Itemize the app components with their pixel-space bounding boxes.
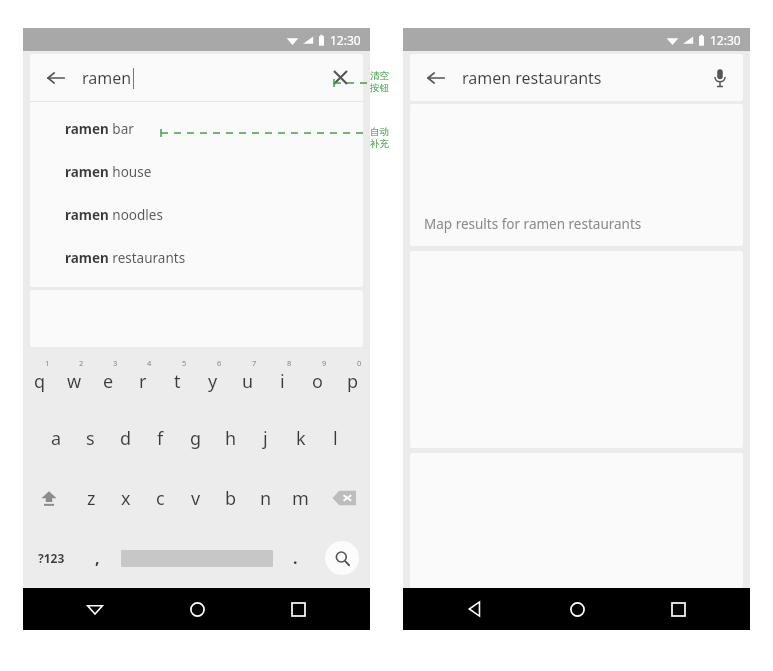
- button[interactable]: ramen house: [30, 150, 363, 193]
- staticText: l: [333, 426, 338, 451]
- button[interactable]: 2: [57, 349, 91, 408]
- button[interactable]: Clear: [317, 54, 363, 101]
- button[interactable]: j: [248, 408, 283, 468]
- button[interactable]: d: [108, 408, 143, 468]
- staticText: .: [293, 547, 298, 569]
- staticText: ramen house: [65, 163, 152, 181]
- button[interactable]: Backspace: [318, 468, 370, 528]
- button[interactable]: Back: [445, 588, 505, 630]
- staticText: 补充: [370, 138, 389, 150]
- staticText: 2: [79, 358, 84, 368]
- button[interactable]: x: [108, 468, 143, 528]
- button[interactable]: n: [248, 468, 283, 528]
- staticText: w: [67, 369, 82, 394]
- staticText: o: [312, 369, 323, 394]
- staticText: ramen noodles: [65, 206, 163, 224]
- button[interactable]: b: [213, 468, 248, 528]
- button[interactable]: a: [39, 408, 73, 468]
- staticText: 5: [182, 358, 187, 368]
- staticText: 自动: [370, 126, 389, 138]
- button[interactable]: h: [213, 408, 248, 468]
- staticText: m: [292, 486, 309, 511]
- staticText: 1: [45, 358, 50, 368]
- button[interactable]: ?123: [23, 528, 80, 588]
- button[interactable]: .: [278, 528, 313, 588]
- button[interactable]: 8: [265, 349, 300, 408]
- button[interactable]: g: [178, 408, 213, 468]
- button[interactable]: 9: [300, 349, 335, 408]
- button[interactable]: 7: [230, 349, 265, 408]
- button[interactable]: ramen noodles: [30, 193, 363, 236]
- button[interactable]: 5: [160, 349, 195, 408]
- button[interactable]: 1: [23, 349, 57, 408]
- staticText: p: [347, 369, 359, 394]
- staticText: c: [156, 486, 165, 511]
- button[interactable]: f: [143, 408, 178, 468]
- staticText: x: [121, 486, 131, 511]
- staticText: ramen: [82, 67, 132, 89]
- staticText: 12:30: [330, 32, 361, 48]
- button[interactable]: z: [74, 468, 108, 528]
- button[interactable]: Home: [547, 588, 607, 630]
- button[interactable]: 6: [195, 349, 230, 408]
- staticText: e: [103, 369, 114, 394]
- staticText: 3: [113, 358, 118, 368]
- staticText: 4: [147, 358, 152, 368]
- staticText: u: [242, 369, 254, 394]
- staticText: d: [120, 426, 132, 451]
- button[interactable]: v: [178, 468, 213, 528]
- staticText: n: [260, 486, 272, 511]
- staticText: z: [87, 486, 96, 511]
- button[interactable]: c: [143, 468, 178, 528]
- staticText: k: [296, 426, 306, 451]
- button[interactable]: Back: [30, 54, 82, 101]
- button[interactable]: 4: [125, 349, 160, 408]
- staticText: i: [280, 369, 285, 394]
- button[interactable]: Voice search: [697, 54, 743, 101]
- staticText: s: [86, 426, 95, 451]
- button[interactable]: Recents: [268, 588, 328, 630]
- button[interactable]: l: [318, 408, 353, 468]
- staticText: h: [225, 426, 237, 451]
- staticText: a: [51, 426, 62, 451]
- staticText: 清空: [370, 70, 389, 82]
- button[interactable]: ramen bar: [30, 107, 363, 150]
- staticText: ramen restaurants: [462, 67, 602, 89]
- button[interactable]: ,: [80, 528, 115, 588]
- staticText: t: [174, 369, 181, 394]
- staticText: ramen bar: [65, 120, 134, 138]
- button[interactable]: Shift: [23, 468, 74, 528]
- button[interactable]: Search: [313, 528, 370, 588]
- button[interactable]: k: [283, 408, 318, 468]
- staticText: 9: [322, 358, 327, 368]
- staticText: g: [190, 426, 202, 451]
- staticText: 8: [287, 358, 292, 368]
- button[interactable]: Map results for ramen restaurants: [410, 104, 743, 246]
- staticText: ,: [95, 547, 100, 569]
- staticText: 0: [357, 358, 362, 368]
- staticText: ?123: [38, 550, 65, 566]
- staticText: 6: [217, 358, 222, 368]
- staticText: 7: [252, 358, 257, 368]
- button[interactable]: ramen restaurants: [30, 236, 363, 279]
- button[interactable]: 3: [91, 349, 125, 408]
- staticText: q: [34, 369, 46, 394]
- staticText: f: [157, 426, 164, 451]
- staticText: y: [208, 369, 218, 394]
- button[interactable]: Hide keyboard: [65, 588, 125, 630]
- staticText: ramen restaurants: [65, 249, 186, 267]
- staticText: v: [191, 486, 201, 511]
- button[interactable]: Space: [115, 528, 278, 588]
- button[interactable]: Recents: [648, 588, 708, 630]
- button[interactable]: 0: [335, 349, 370, 408]
- button[interactable]: m: [283, 468, 318, 528]
- button[interactable]: Back: [410, 54, 462, 101]
- staticText: r: [139, 369, 147, 394]
- button[interactable]: s: [73, 408, 108, 468]
- staticText: Map results for ramen restaurants: [424, 215, 642, 233]
- staticText: j: [263, 426, 268, 451]
- button[interactable]: Home: [167, 588, 227, 630]
